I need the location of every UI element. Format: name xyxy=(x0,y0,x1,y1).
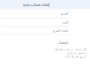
staticText: الشروط والأحكام xyxy=(64,53,86,60)
staticText: البريد xyxy=(61,18,68,26)
button[interactable]: تسجيل xyxy=(57,39,68,45)
staticText: كلمة المرور xyxy=(52,27,68,35)
staticText: تسجيل xyxy=(57,38,67,46)
button[interactable]: البريد xyxy=(0,18,70,26)
staticText: الاسم xyxy=(60,10,68,18)
button[interactable]: الاسم xyxy=(0,10,70,17)
staticText: تسجيل الدخول xyxy=(66,49,86,56)
staticText: هل لديك حساب بالفعل؟ xyxy=(53,46,86,53)
button[interactable]: كلمة المرور xyxy=(0,27,70,34)
staticText: إنشاء حساب جديد xyxy=(22,0,49,9)
